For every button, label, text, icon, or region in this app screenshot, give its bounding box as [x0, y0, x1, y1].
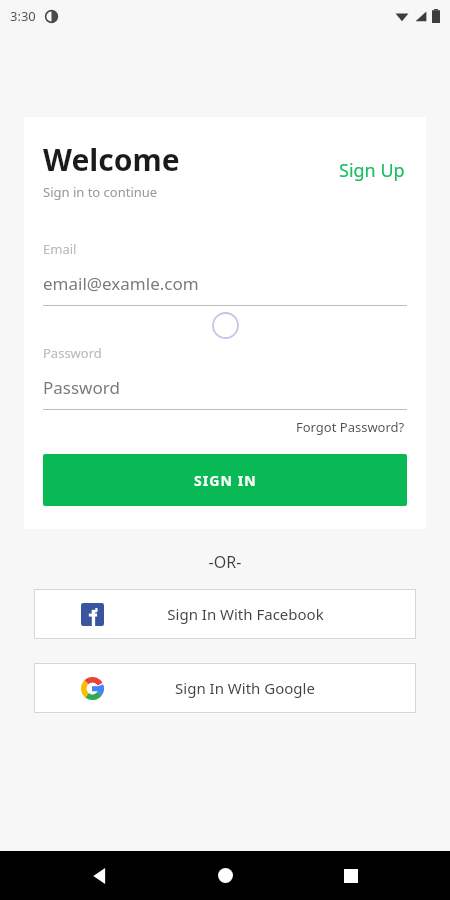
staticText: Email: [43, 240, 77, 258]
button[interactable]: Recent apps: [325, 851, 377, 900]
staticText: Forgot Password?: [296, 418, 405, 436]
button[interactable]: Forgot Password?: [294, 416, 407, 438]
staticText: SIGN IN: [194, 471, 257, 490]
staticText: 3:30: [10, 7, 36, 25]
staticText: Password: [43, 376, 120, 399]
staticText: Sign In With Google: [175, 678, 315, 698]
button[interactable]: Sign Up: [337, 154, 407, 187]
button[interactable]: Sign In With Facebook: [34, 589, 416, 639]
staticText: -OR-: [0, 551, 450, 573]
button[interactable]: SIGN IN: [43, 454, 407, 506]
button[interactable]: Home: [199, 851, 251, 900]
button[interactable]: Password: [43, 376, 407, 399]
staticText: Sign In With Facebook: [167, 604, 324, 624]
staticText: Sign in to continue: [43, 183, 158, 201]
button[interactable]: Back: [74, 851, 126, 900]
button[interactable]: email@examle.com: [43, 272, 407, 295]
staticText: email@examle.com: [43, 272, 199, 295]
staticText: Password: [43, 344, 102, 362]
staticText: Sign Up: [339, 158, 405, 183]
staticText: Welcome: [43, 139, 180, 180]
button[interactable]: Sign In With Google: [34, 663, 416, 713]
